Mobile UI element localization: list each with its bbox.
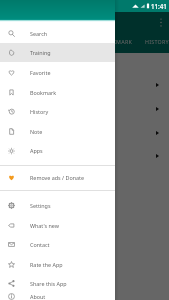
staticText: Remove ads / Donate (30, 174, 85, 181)
staticText: Share this App (30, 280, 67, 287)
button[interactable]: Favorite (0, 62, 115, 82)
staticText: Favorite (30, 69, 51, 76)
staticText: Settings (30, 202, 51, 209)
staticText: Apps (30, 147, 43, 154)
staticText: About (30, 293, 46, 300)
button[interactable]: Note (0, 121, 115, 141)
button[interactable]: What's new (0, 215, 115, 235)
staticText: Training (30, 49, 51, 56)
button[interactable]: Rate the App (0, 254, 115, 274)
button[interactable]: More options (155, 17, 166, 28)
staticText: 11:41 (151, 2, 167, 10)
button[interactable]: Share this App (0, 274, 115, 293)
button[interactable]: Search (0, 23, 115, 43)
staticText: Search (30, 30, 48, 37)
button[interactable] (0, 73, 169, 97)
button[interactable]: Bookmark (0, 82, 115, 102)
staticText: BOOKMARK (100, 38, 133, 45)
staticText: What's new (30, 222, 59, 229)
button[interactable]: HISTORY (145, 31, 169, 52)
button[interactable]: History (0, 102, 115, 121)
staticText: Rate the App (30, 261, 63, 268)
button[interactable]: Training (0, 43, 115, 62)
button[interactable] (0, 121, 169, 145)
button[interactable]: Settings (0, 195, 115, 215)
staticText: History (30, 108, 49, 115)
button[interactable]: BOOKMARK (100, 31, 133, 52)
staticText: HISTORY (145, 38, 169, 45)
button[interactable]: Remove ads / Donate (0, 167, 115, 187)
button[interactable]: About (0, 293, 115, 300)
staticText: Note (30, 128, 43, 135)
staticText: Contact (30, 241, 50, 248)
staticText: Bookmark (30, 89, 57, 96)
button[interactable]: Contact (0, 235, 115, 254)
button[interactable]: Apps (0, 141, 115, 160)
button[interactable] (0, 144, 169, 168)
button[interactable] (0, 97, 169, 121)
